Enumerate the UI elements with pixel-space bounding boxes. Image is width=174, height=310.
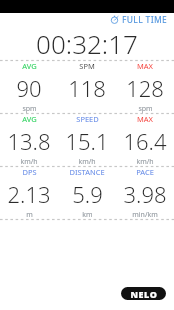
staticText: DPS [22,167,37,177]
staticText: FULL TIME [122,14,168,26]
staticText: DISTANCE [69,167,105,177]
button[interactable]: DISTANCE [58,167,116,219]
button[interactable]: DPS [0,167,58,219]
button[interactable]: MAX [116,114,174,166]
staticText: 13.8 [7,126,51,156]
staticText: km/h [20,157,38,166]
button[interactable]: Nelo logo [121,287,166,300]
staticText: km [82,210,93,219]
staticText: km/h [78,157,96,166]
staticText: 128 [126,73,164,103]
staticText: 90 [16,73,42,103]
staticText: MAX [137,61,153,71]
button[interactable]: PACE [116,167,174,219]
staticText: PACE [136,167,154,177]
staticText: km/h [136,157,154,166]
staticText: MAX [137,114,153,124]
staticText: m [26,210,33,219]
staticText: spm [22,104,37,113]
staticText: spm [138,104,153,113]
staticText: 16.4 [123,126,167,156]
staticText: SPM [79,61,95,71]
staticText: 15.1 [65,126,109,156]
staticText: 2.13 [7,179,51,209]
staticText: NELO [130,288,158,300]
staticText: 3.98 [123,179,167,209]
staticText: SPEED [76,114,99,124]
button[interactable]: MAX [116,61,174,113]
staticText: AVG [22,114,37,124]
button[interactable]: FULL TIME [0,13,168,26]
staticText: 00:32:17 [36,26,138,58]
button[interactable]: AVG [0,114,58,166]
button[interactable]: AVG [0,61,58,113]
button[interactable]: SPM [58,61,116,113]
staticText: 5.9 [72,179,103,209]
button[interactable]: SPEED [58,114,116,166]
staticText: AVG [22,61,37,71]
staticText: min/km [132,210,158,219]
staticText: 118 [68,73,106,103]
button[interactable]: 00:32:17 [0,26,174,58]
